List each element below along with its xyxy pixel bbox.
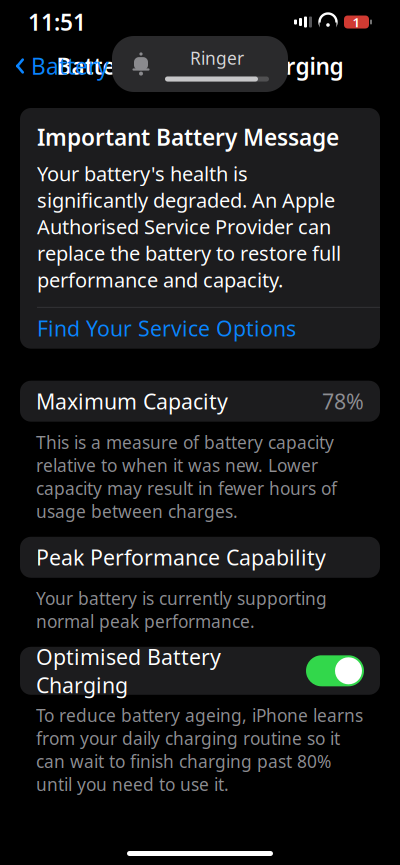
staticText: This is a measure of battery capacity re… — [36, 431, 337, 523]
staticText: Your battery is currently supporting nor… — [36, 587, 327, 633]
staticText: Maximum Capacity — [36, 387, 228, 415]
staticText: Battery — [31, 51, 109, 81]
button[interactable]: Find Your Service Options — [20, 308, 380, 349]
staticText: Peak Performance Capability — [36, 543, 326, 571]
staticText: 1 — [352, 13, 360, 31]
staticText: Ringer — [190, 46, 244, 69]
staticText: Battery Health & Charging — [56, 51, 343, 81]
staticText: Optimised Battery Charging — [36, 642, 221, 699]
staticText: 11:51 — [28, 7, 86, 37]
button[interactable]: Optimised Battery Charging — [0, 647, 400, 695]
button[interactable]: Battery — [10, 43, 113, 89]
staticText: To reduce battery ageing, iPhone learns … — [36, 704, 363, 796]
staticText: Find Your Service Options — [37, 314, 296, 342]
staticText: 78% — [322, 387, 364, 415]
staticText: Your battery's health is significantly d… — [37, 160, 341, 293]
staticText: Important Battery Message — [37, 122, 339, 152]
